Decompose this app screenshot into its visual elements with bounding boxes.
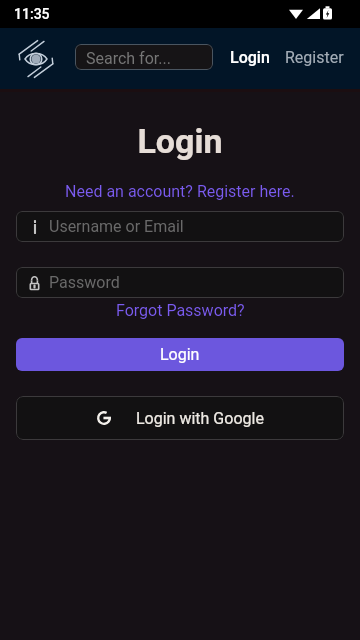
staticText: Password [49,273,120,292]
button[interactable]: Login [16,338,344,371]
staticText: Login [0,121,360,161]
staticText: Register [285,48,344,67]
staticText: Login with Google [136,409,264,428]
button[interactable]: Search for... [75,44,213,70]
button[interactable]: Home [15,38,57,80]
button[interactable]: Need an account? Register here. [59,181,301,202]
staticText: Need an account? Register here. [65,182,295,201]
staticText: Search for... [86,49,171,68]
button[interactable]: Register [281,40,348,75]
button[interactable]: Login [226,40,274,75]
button[interactable]: Forgot Password? [110,300,251,321]
button[interactable]: Username or Email [16,211,344,242]
staticText: Login [230,48,270,67]
button[interactable]: Login with Google [16,396,344,440]
staticText: Username or Email [49,217,184,236]
staticText: Login [160,345,200,364]
button[interactable]: Password [16,267,344,298]
staticText: Forgot Password? [116,301,245,320]
staticText: 11:35 [14,6,50,22]
